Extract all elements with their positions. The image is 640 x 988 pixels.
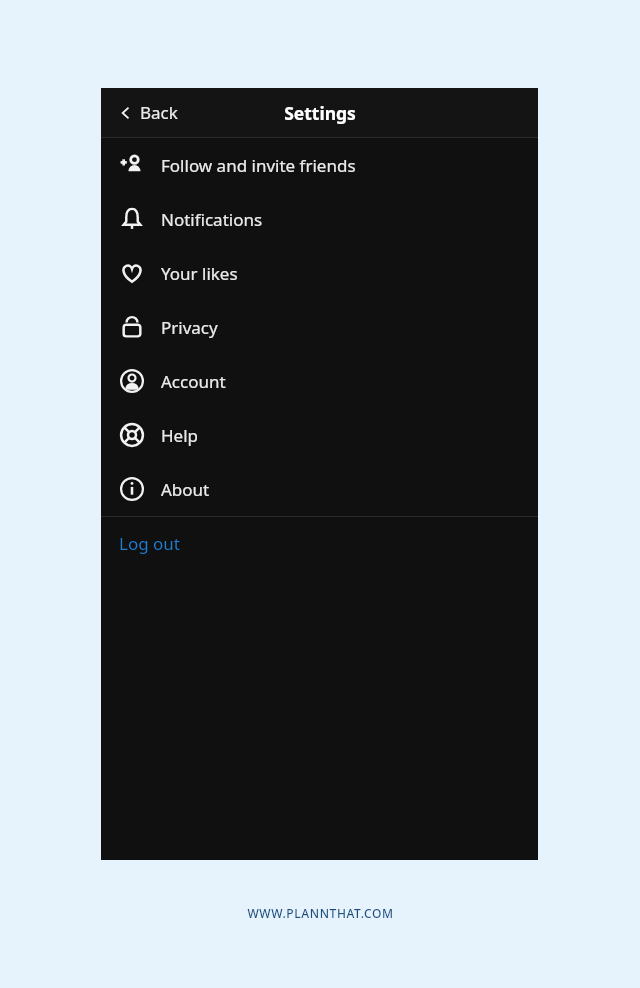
staticText: Account <box>161 370 226 393</box>
button[interactable]: Help <box>101 408 538 462</box>
staticText: Privacy <box>161 316 218 339</box>
button[interactable]: Follow and invite friends <box>101 138 538 192</box>
staticText: Your likes <box>161 262 238 285</box>
button[interactable]: Notifications <box>101 192 538 246</box>
button[interactable]: Log out <box>101 517 538 570</box>
button[interactable]: About <box>101 462 538 516</box>
staticText: Log out <box>119 532 180 555</box>
staticText: WWW.PLANNTHAT.COM <box>247 905 394 921</box>
button[interactable]: Privacy <box>101 300 538 354</box>
button[interactable]: Your likes <box>101 246 538 300</box>
staticText: Settings <box>284 101 356 125</box>
staticText: Back <box>140 101 178 124</box>
staticText: Help <box>161 424 199 447</box>
staticText: Notifications <box>161 208 263 231</box>
button[interactable]: Back <box>115 95 182 130</box>
staticText: Follow and invite friends <box>161 154 356 177</box>
staticText: About <box>161 478 210 501</box>
button[interactable]: Account <box>101 354 538 408</box>
